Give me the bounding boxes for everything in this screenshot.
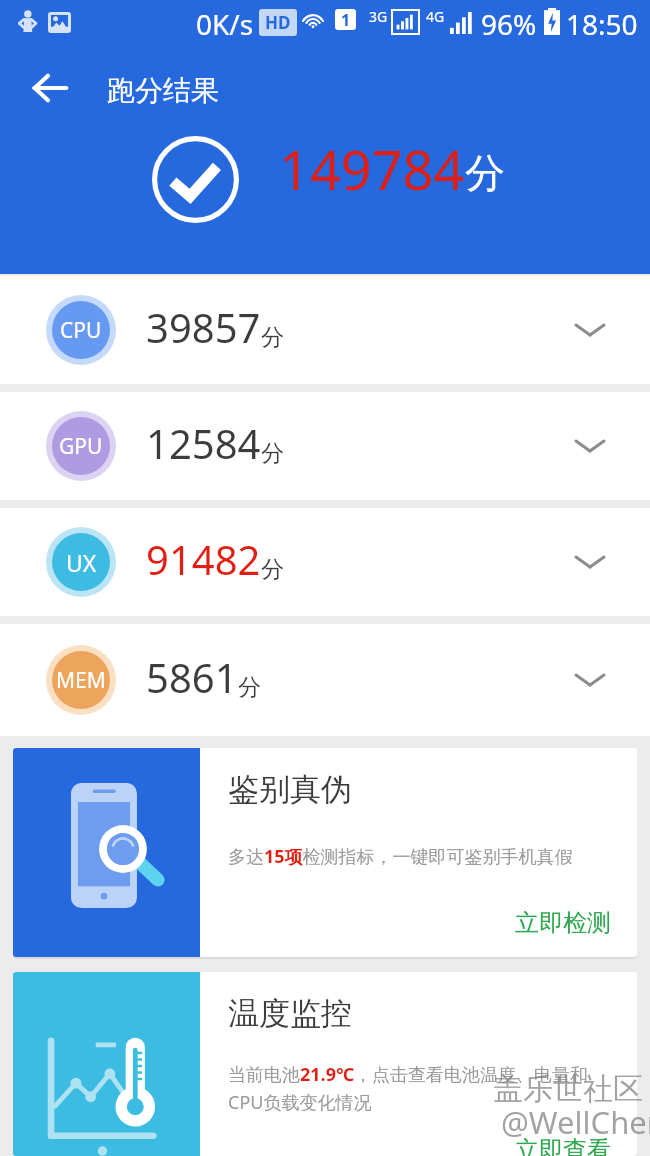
staticText: 鉴别真伪: [228, 770, 352, 809]
staticText: 立即查看: [200, 1135, 611, 1156]
staticText: CPU: [60, 316, 102, 345]
staticText: 0K/s: [196, 5, 254, 43]
staticText: HD: [265, 11, 291, 34]
staticText: 39857: [146, 300, 261, 354]
staticText: 分: [261, 439, 284, 468]
staticText: 149784: [279, 132, 465, 206]
staticText: 盖乐世社区: [493, 1070, 643, 1108]
button[interactable]: GPU: [0, 392, 650, 500]
staticText: 分: [465, 148, 505, 198]
staticText: 12584: [146, 416, 261, 470]
button[interactable]: CPU: [0, 276, 650, 384]
button[interactable]: 鉴别真伪: [13, 748, 637, 957]
staticText: 91482: [146, 532, 261, 586]
staticText: GPU: [59, 432, 103, 461]
staticText: 跑分结果: [107, 73, 219, 108]
staticText: 18:50: [566, 5, 638, 43]
staticText: 立即检测: [200, 908, 611, 938]
staticText: 温度监控: [228, 994, 352, 1033]
staticText: 3G: [369, 7, 388, 26]
staticText: MEM: [56, 666, 106, 695]
staticText: 1: [341, 9, 351, 30]
staticText: UX: [66, 547, 97, 578]
button[interactable]: MEM: [0, 624, 650, 736]
staticText: 多达15项检测指标，一键即可鉴别手机真假: [228, 844, 573, 869]
button[interactable]: UX: [0, 508, 650, 616]
staticText: 分: [261, 555, 284, 584]
staticText: @WellChen: [501, 1101, 650, 1143]
button[interactable]: Back: [16, 54, 84, 122]
staticText: 96%: [481, 5, 537, 43]
staticText: 分: [238, 673, 261, 702]
staticText: 5861: [146, 650, 238, 704]
staticText: 4G: [426, 7, 445, 26]
button[interactable]: 温度监控: [13, 972, 637, 1156]
staticText: 分: [261, 323, 284, 352]
staticText: 当前电池21.9℃，点击查看电池温度、电量和 CPU负载变化情况: [228, 1062, 589, 1115]
